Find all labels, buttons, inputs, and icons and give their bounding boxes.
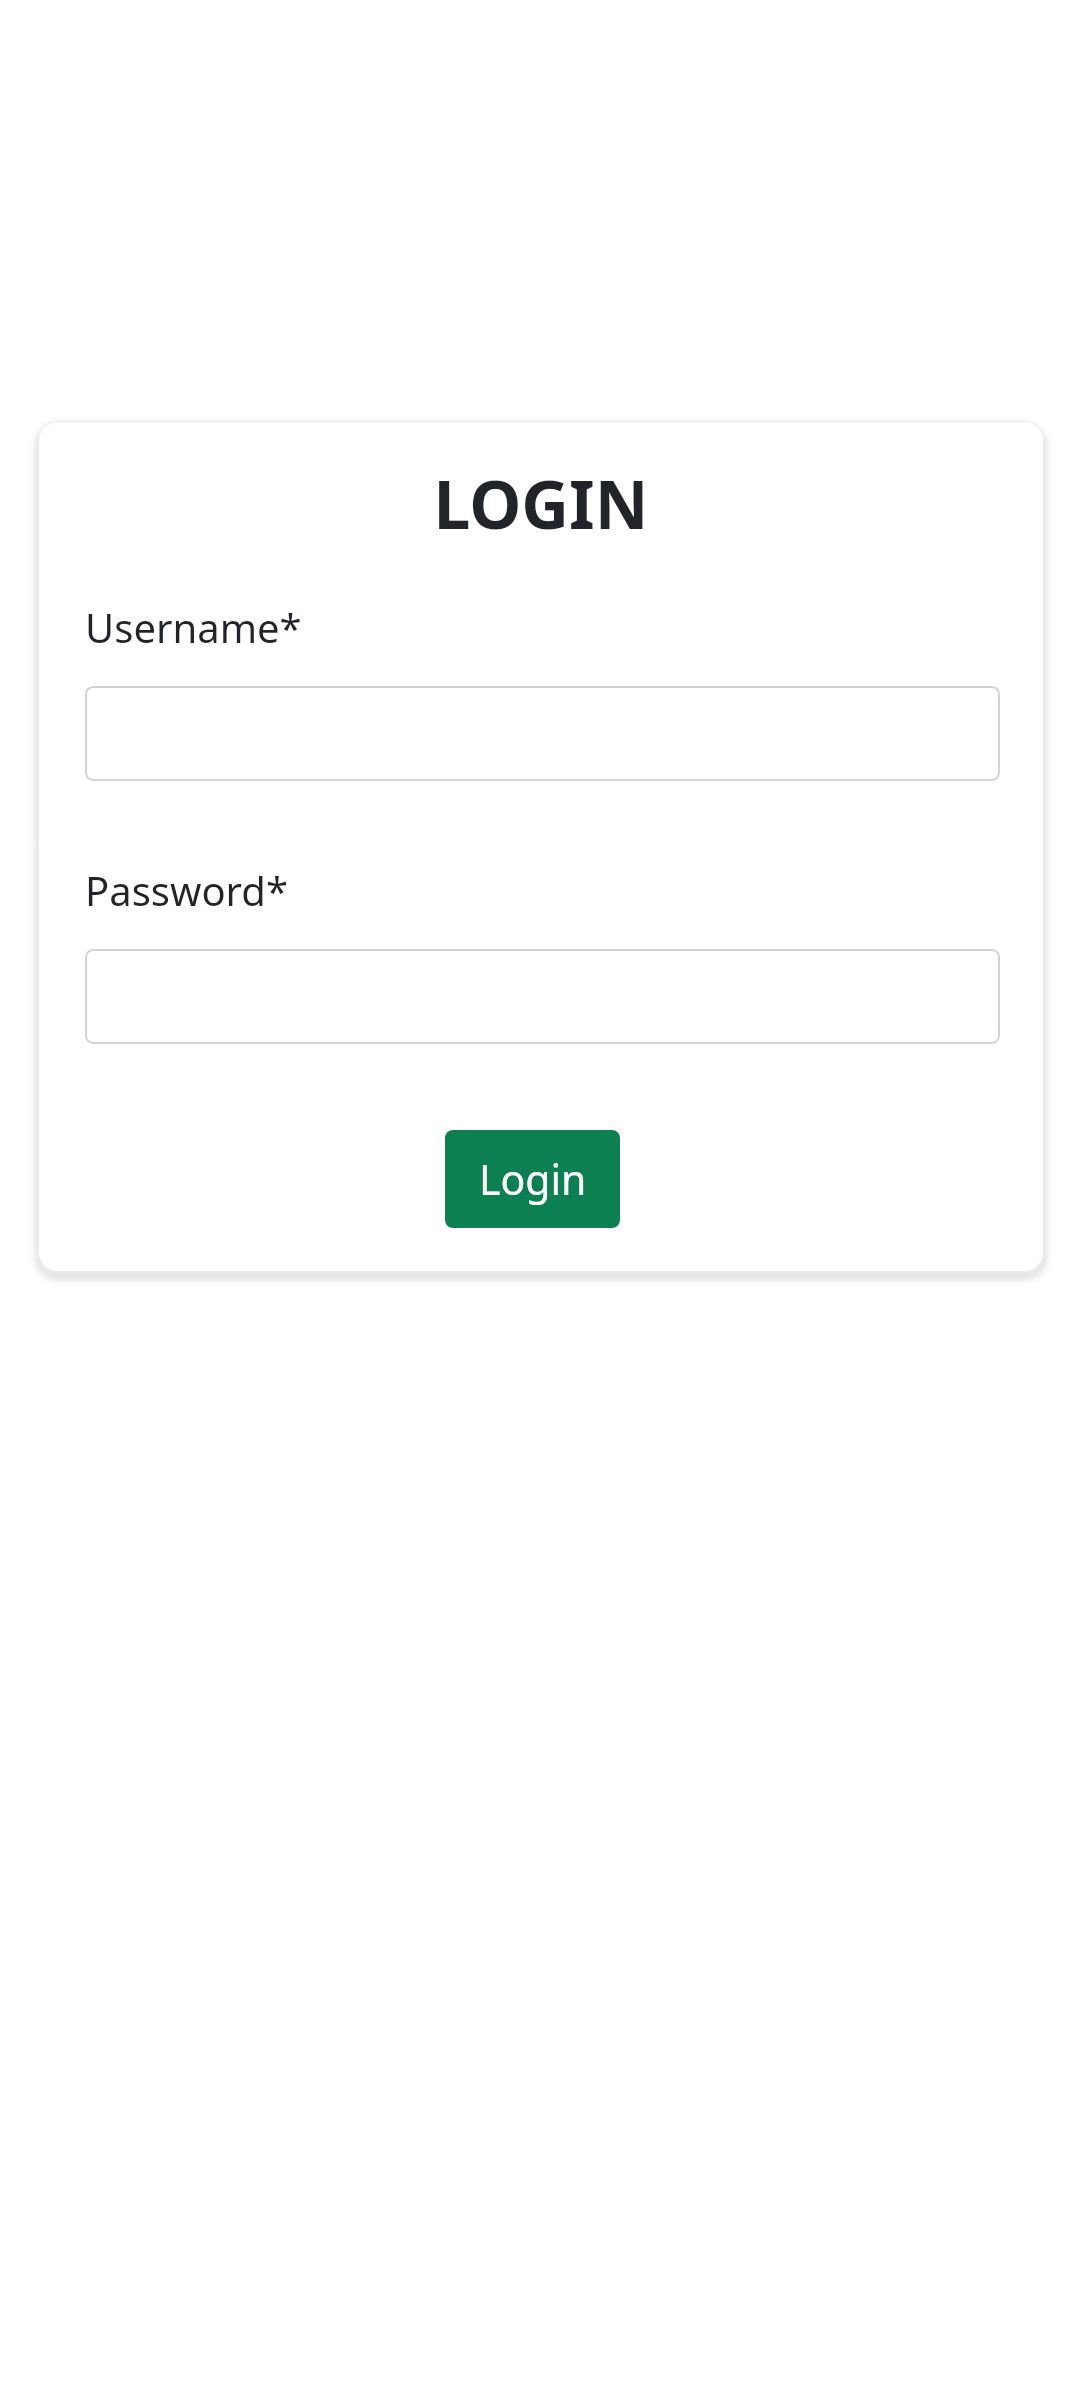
button[interactable]: Password input field <box>85 949 1000 1044</box>
button[interactable]: Username input field <box>85 686 1000 781</box>
staticText: Username* <box>85 600 302 654</box>
staticText: Login <box>479 1151 587 1207</box>
staticText: Password* <box>85 863 288 917</box>
button[interactable]: Login <box>445 1130 620 1228</box>
staticText: LOGIN <box>38 458 1044 548</box>
